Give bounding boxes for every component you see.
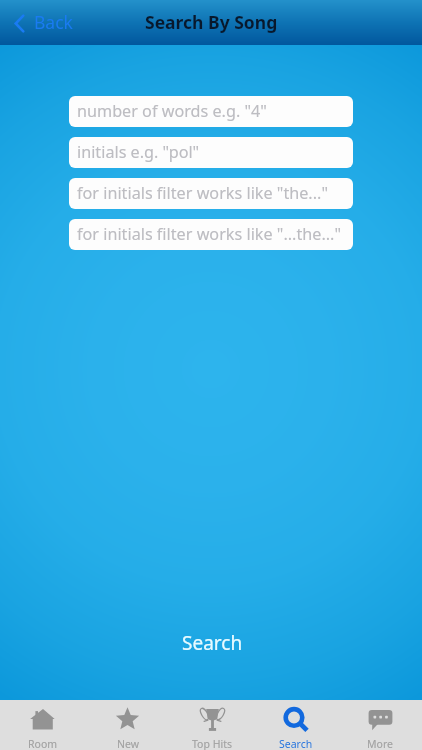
button[interactable]: Search	[254, 700, 338, 750]
button[interactable]: Top Hits	[170, 700, 254, 750]
staticText: initials e.g. "pol"	[77, 141, 200, 163]
staticText: Top Hits	[192, 737, 232, 750]
button[interactable]: for initials filter works like "the..."	[69, 178, 353, 209]
staticText: for initials filter works like "...the..…	[77, 223, 342, 245]
staticText: Search	[279, 737, 313, 750]
staticText: for initials filter works like "the..."	[77, 182, 328, 204]
button[interactable]: Back	[0, 6, 83, 40]
staticText: Room	[28, 737, 58, 750]
button[interactable]: initials e.g. "pol"	[69, 137, 353, 168]
button[interactable]: More	[338, 700, 422, 750]
button[interactable]: number of words e.g. "4"	[69, 96, 353, 127]
staticText: More	[367, 737, 393, 750]
other: Back	[14, 14, 25, 33]
button[interactable]: Search	[156, 623, 269, 663]
staticText: Search	[182, 630, 243, 656]
button[interactable]: for initials filter works like "...the..…	[69, 219, 353, 250]
staticText: New	[117, 737, 139, 750]
staticText: Search By Song	[145, 10, 278, 34]
button[interactable]: New	[85, 700, 170, 750]
button[interactable]: Room	[0, 700, 85, 750]
staticText: number of words e.g. "4"	[77, 100, 267, 122]
staticText: Back	[34, 10, 73, 34]
